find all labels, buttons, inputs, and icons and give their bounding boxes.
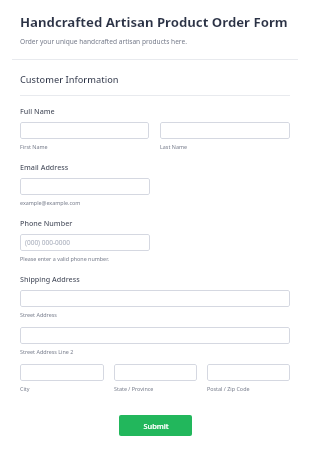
staticText: Last Name — [160, 143, 187, 150]
staticText: First Name — [20, 143, 48, 150]
button[interactable] — [20, 327, 290, 344]
button[interactable]: Submit — [119, 415, 192, 436]
staticText: Email Address — [20, 162, 69, 172]
button[interactable] — [207, 364, 290, 381]
staticText: example@example.com — [20, 199, 81, 206]
button[interactable] — [160, 122, 290, 139]
button[interactable] — [20, 178, 150, 195]
staticText: (000) 000-0000 — [25, 238, 70, 247]
button[interactable] — [20, 122, 149, 139]
staticText: Submit — [143, 421, 169, 431]
staticText: Please enter a valid phone number. — [20, 255, 109, 262]
staticText: Street Address — [20, 311, 57, 318]
button[interactable]: (000) 000-0000 — [20, 234, 150, 251]
staticText: Order your unique handcrafted artisan pr… — [20, 37, 187, 46]
staticText: State / Province — [114, 385, 154, 392]
staticText: Customer Information — [20, 73, 119, 86]
button[interactable] — [20, 290, 290, 307]
staticText: Postal / Zip Code — [207, 385, 250, 392]
button[interactable] — [20, 364, 104, 381]
button[interactable] — [114, 364, 197, 381]
staticText: Phone Number — [20, 218, 73, 228]
staticText: City — [20, 385, 30, 392]
staticText: Handcrafted Artisan Product Order Form — [20, 13, 288, 31]
staticText: Street Address Line 2 — [20, 348, 74, 355]
staticText: Shipping Address — [20, 274, 80, 284]
staticText: Full Name — [20, 106, 55, 116]
